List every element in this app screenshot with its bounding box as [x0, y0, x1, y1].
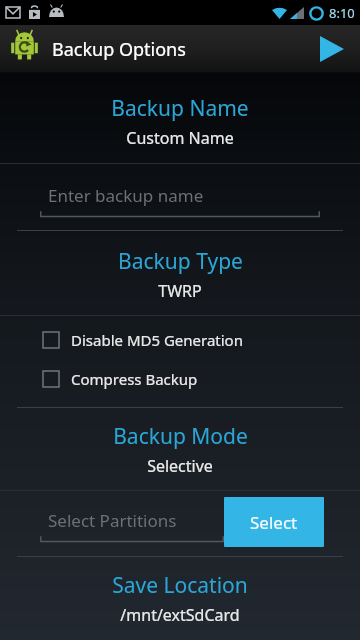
button[interactable]: Disable MD5 Generation [0, 326, 360, 354]
staticText: Backup Type [118, 247, 243, 276]
staticText: Backup Options [52, 37, 186, 62]
button[interactable]: Select Partitions [40, 501, 224, 543]
button[interactable]: Start backup [304, 25, 360, 73]
staticText: Enter backup name [48, 184, 204, 207]
staticText: TWRP [158, 280, 202, 302]
staticText: Save Location [112, 571, 248, 600]
staticText: /mnt/extSdCard [120, 604, 240, 626]
staticText: 8:10 [329, 4, 355, 22]
button[interactable]: Enter backup name [40, 176, 320, 218]
staticText: Select [250, 511, 298, 534]
staticText: Selective [147, 455, 213, 477]
button[interactable]: Select [224, 497, 324, 547]
staticText: Backup Name [111, 94, 249, 123]
staticText: Disable MD5 Generation [71, 330, 243, 350]
staticText: Select Partitions [48, 509, 177, 532]
staticText: Backup Mode [113, 422, 248, 451]
staticText: Custom Name [126, 127, 234, 149]
staticText: Compress Backup [71, 369, 198, 389]
button[interactable]: Compress Backup [0, 365, 360, 393]
button[interactable]: Backup Options [9, 34, 186, 65]
